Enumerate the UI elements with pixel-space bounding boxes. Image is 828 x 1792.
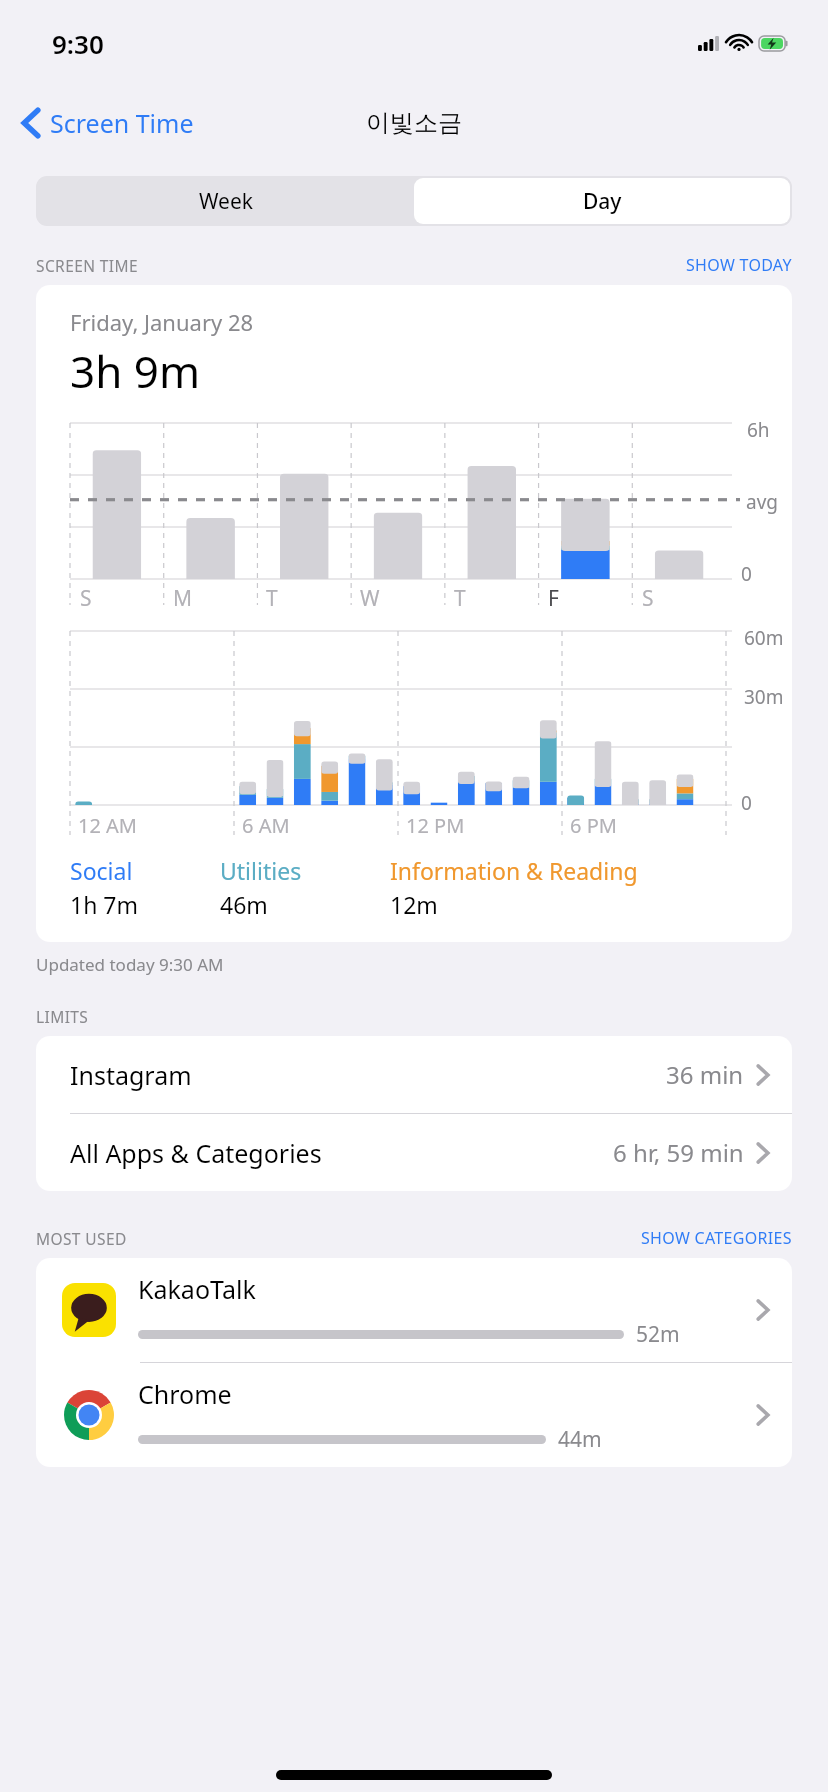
staticText: Social xyxy=(70,855,133,886)
staticText: 1h 7m xyxy=(70,889,139,920)
staticText: 12m xyxy=(390,889,438,920)
button[interactable]: KakaoTalk xyxy=(36,1258,792,1363)
staticText: All Apps & Categories xyxy=(70,1136,322,1170)
button[interactable]: Instagram xyxy=(36,1036,792,1114)
staticText: Week xyxy=(199,187,254,216)
staticText: 6 PM xyxy=(570,812,617,839)
staticText: 46m xyxy=(220,889,268,920)
staticText: M xyxy=(173,584,193,613)
staticText: T xyxy=(454,584,466,613)
staticText: 6 hr, 59 min xyxy=(613,1136,744,1169)
staticText: 52m xyxy=(636,1320,680,1349)
staticText: 12 PM xyxy=(406,812,465,839)
button[interactable]: Screen Time xyxy=(0,100,206,146)
staticText: Instagram xyxy=(70,1058,192,1092)
staticText: 이빛소금 xyxy=(366,108,462,138)
staticText: F xyxy=(548,584,559,613)
button[interactable]: Chrome xyxy=(36,1363,792,1467)
staticText: Utilities xyxy=(220,855,302,886)
staticText: 3h 9m xyxy=(70,341,201,401)
staticText: KakaoTalk xyxy=(138,1272,256,1306)
staticText: S xyxy=(80,584,92,613)
staticText: Friday, January 28 xyxy=(70,307,254,337)
staticText: SHOW TODAY xyxy=(686,254,792,276)
staticText: MOST USED xyxy=(36,1228,127,1249)
staticText: 30m xyxy=(744,684,784,710)
staticText: 9:30 xyxy=(52,26,104,61)
staticText: SCREEN TIME xyxy=(36,255,138,276)
staticText: 60m xyxy=(744,625,784,651)
staticText: 6h xyxy=(747,417,770,443)
button[interactable]: SHOW TODAY xyxy=(686,254,792,276)
button[interactable]: SHOW CATEGORIES xyxy=(641,1227,792,1249)
staticText: 0 xyxy=(741,561,752,587)
staticText: 44m xyxy=(558,1425,602,1454)
staticText: Screen Time xyxy=(50,106,194,140)
staticText: Day xyxy=(583,187,622,216)
staticText: Chrome xyxy=(138,1377,232,1411)
button[interactable]: Day xyxy=(414,178,790,224)
staticText: 0 xyxy=(741,790,752,816)
staticText: Information & Reading xyxy=(390,855,638,886)
staticText: avg xyxy=(746,489,778,515)
staticText: T xyxy=(266,584,278,613)
button[interactable]: Week xyxy=(38,178,414,224)
button[interactable]: All Apps & Categories xyxy=(36,1114,792,1191)
staticText: W xyxy=(360,584,380,613)
staticText: 12 AM xyxy=(78,812,137,839)
staticText: SHOW CATEGORIES xyxy=(641,1227,792,1249)
staticText: S xyxy=(642,584,654,613)
staticText: 6 AM xyxy=(242,812,290,839)
staticText: LIMITS xyxy=(36,1006,89,1027)
staticText: Updated today 9:30 AM xyxy=(36,953,224,976)
staticText: 36 min xyxy=(666,1058,744,1091)
